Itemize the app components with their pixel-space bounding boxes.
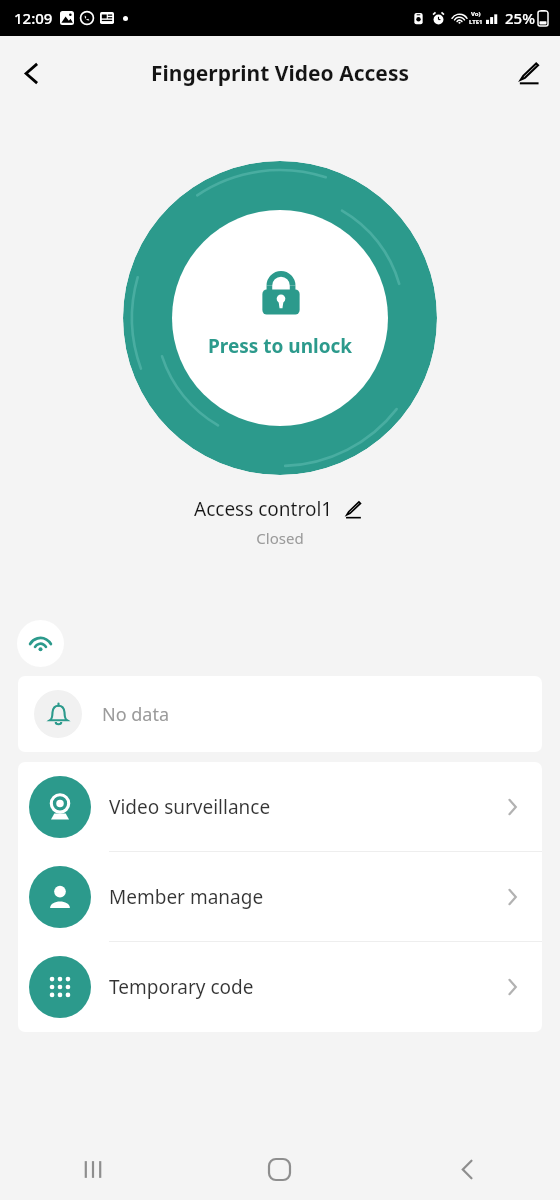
button[interactable]: Recent apps: [0, 1138, 186, 1200]
button[interactable]: Home: [186, 1138, 373, 1200]
button[interactable]: Temporary code: [18, 942, 542, 1032]
button[interactable]: Back: [6, 47, 58, 99]
staticText: Temporary code: [109, 974, 531, 1000]
button[interactable]: Back: [373, 1138, 560, 1200]
button[interactable]: Rename device: [338, 495, 366, 523]
button[interactable]: Edit: [504, 49, 552, 97]
staticText: Fingerprint Video Access: [151, 59, 409, 88]
staticText: Press to unlock: [208, 333, 353, 359]
button[interactable]: No data: [18, 676, 542, 752]
button[interactable]: Wi-Fi status: [17, 620, 64, 667]
staticText: Closed: [0, 528, 560, 548]
staticText: 12:09: [14, 8, 53, 28]
staticText: 25%: [505, 8, 535, 28]
staticText: Member manage: [109, 884, 531, 910]
button[interactable]: Member manage: [18, 852, 542, 942]
staticText: LTE1: [469, 18, 483, 26]
staticText: Video surveillance: [109, 794, 531, 820]
staticText: No data: [102, 702, 170, 727]
button[interactable]: Press to unlock: [123, 161, 437, 475]
staticText: Vo): [471, 10, 481, 18]
staticText: Access control1: [194, 496, 333, 522]
button[interactable]: Video surveillance: [18, 762, 542, 852]
